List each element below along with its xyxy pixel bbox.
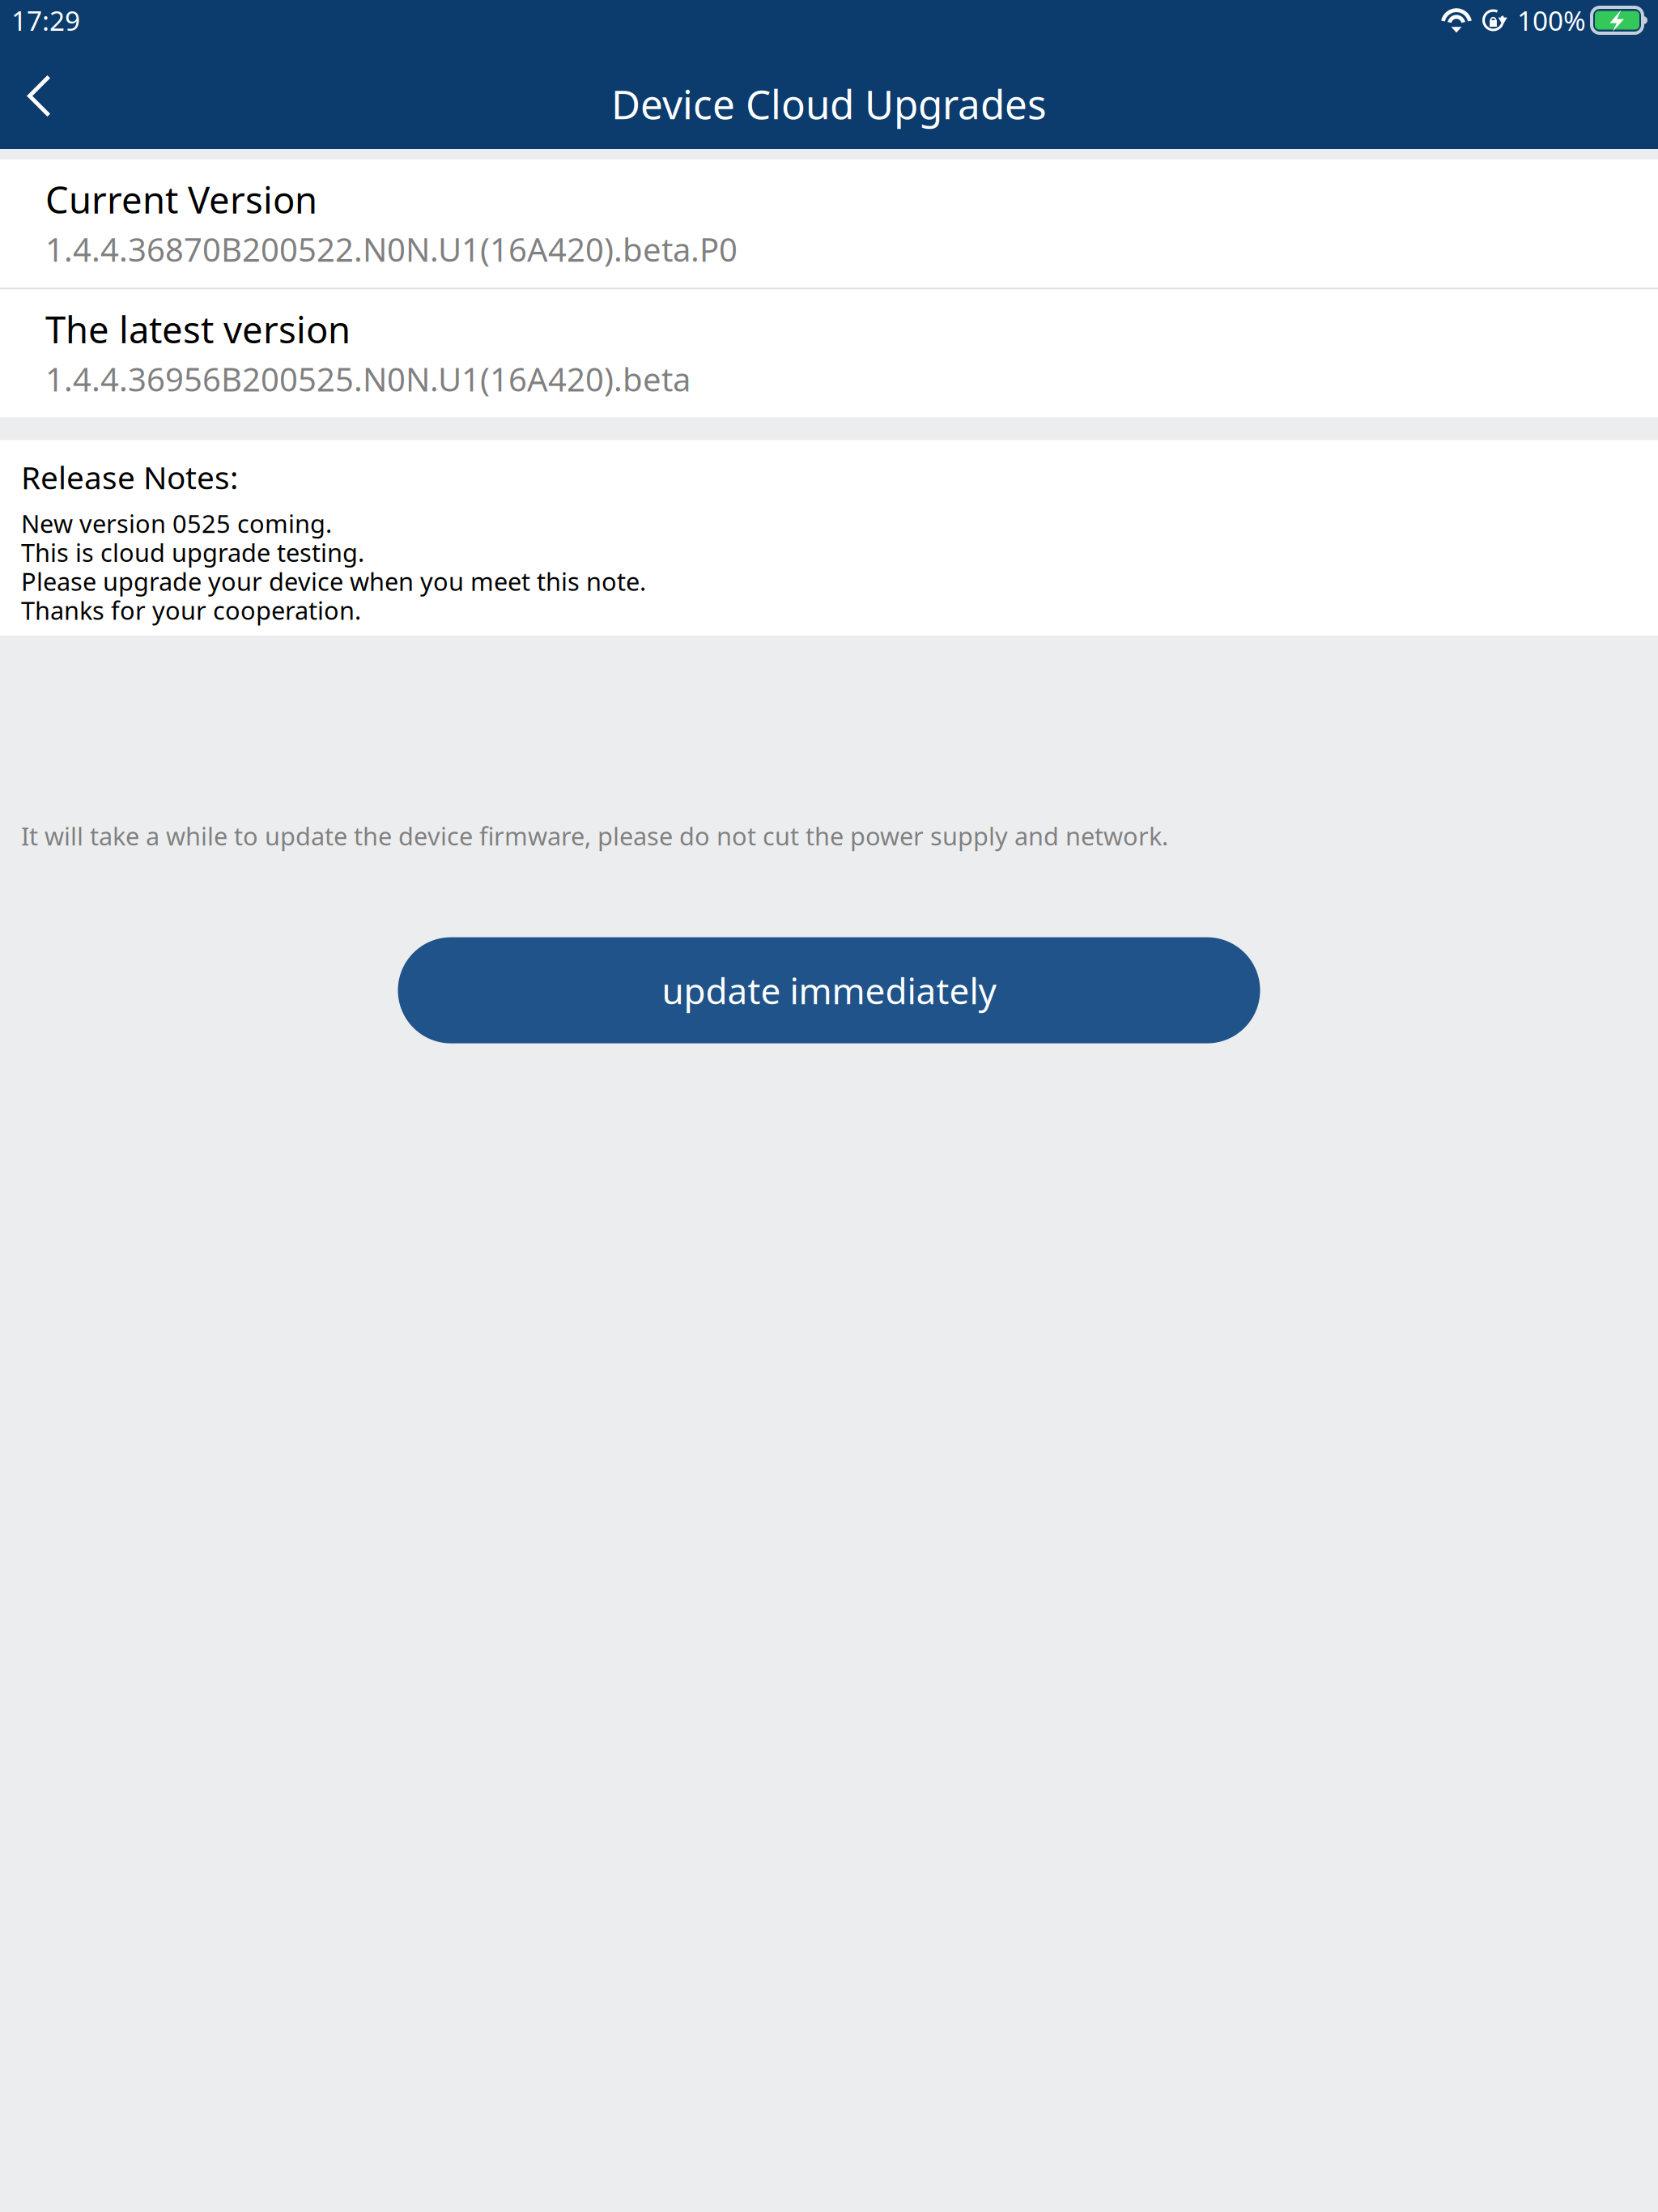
staticText: Device Cloud Upgrades bbox=[611, 77, 1047, 130]
button[interactable]: update immediately bbox=[398, 937, 1260, 1043]
staticText: 1.4.4.36956B200525.N0N.U1(16A420).beta bbox=[45, 357, 691, 400]
staticText: It will take a while to update the devic… bbox=[21, 819, 1168, 852]
staticText: Release Notes: bbox=[21, 456, 238, 498]
staticText: New version 0525 coming. This is cloud u… bbox=[21, 507, 646, 627]
staticText: update immediately bbox=[662, 967, 996, 1014]
staticText: Current Version bbox=[45, 175, 317, 224]
staticText: 100% bbox=[1517, 2, 1586, 38]
staticText: The latest version bbox=[45, 305, 351, 353]
button[interactable]: Back bbox=[0, 54, 76, 145]
staticText: 17:29 bbox=[11, 2, 80, 38]
staticText: 1.4.4.36870B200522.N0N.U1(16A420).beta.P… bbox=[45, 228, 738, 271]
